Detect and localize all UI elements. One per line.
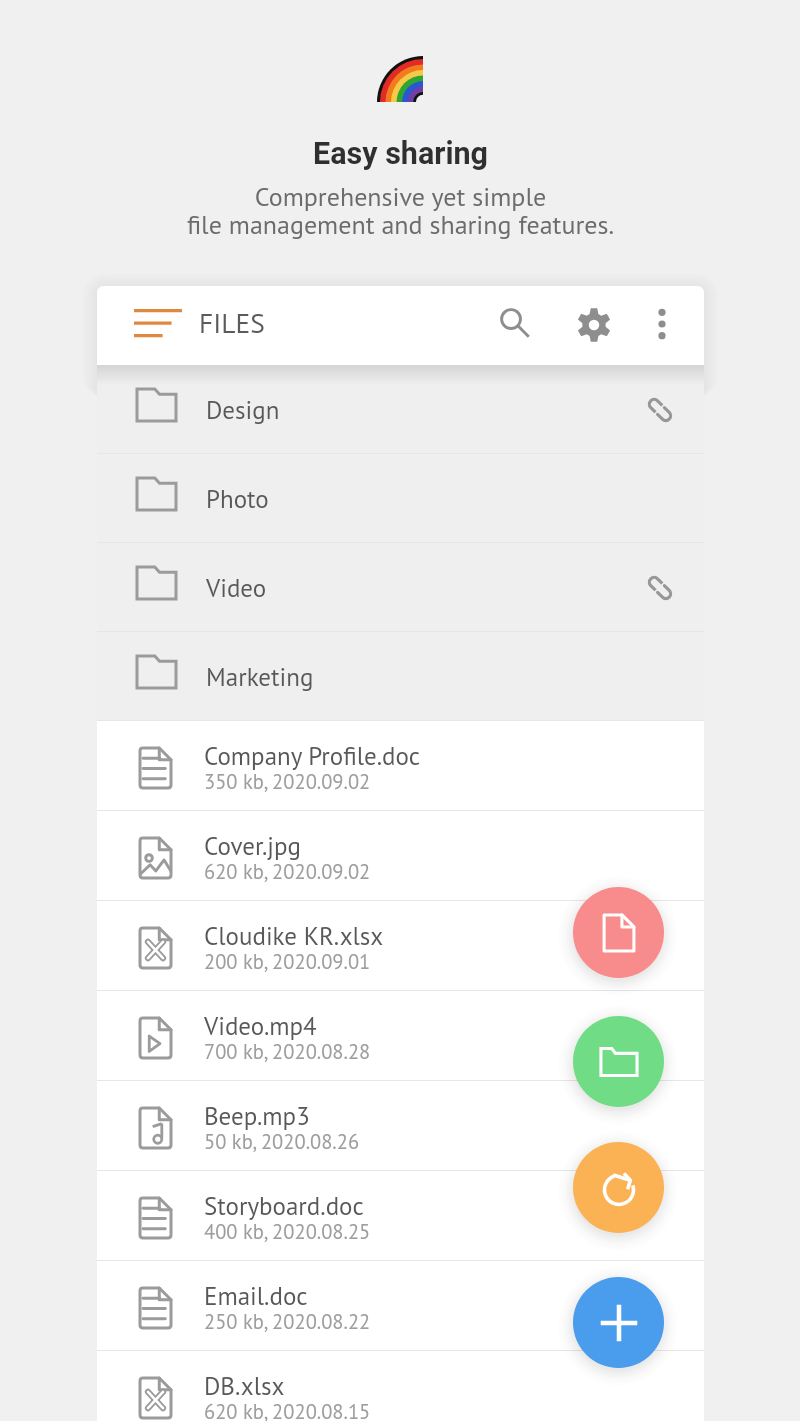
staticText: Photo xyxy=(206,483,269,515)
staticText: 200 kb, 2020.09.01 xyxy=(204,948,371,975)
staticText: Video xyxy=(206,572,267,604)
button[interactable]: New file xyxy=(573,887,664,978)
staticText: Easy sharing xyxy=(313,136,488,172)
button[interactable]: Storyboard.doc xyxy=(97,1171,704,1261)
button[interactable]: Email.doc xyxy=(97,1261,704,1351)
staticText: Comprehensive yet simple file management… xyxy=(187,180,614,241)
button[interactable]: Design xyxy=(97,365,704,454)
staticText: 400 kb, 2020.08.25 xyxy=(204,1218,371,1245)
staticText: Beep.mp3 xyxy=(204,1100,310,1132)
button[interactable]: Cover.jpg xyxy=(97,811,704,901)
staticText: Video.mp4 xyxy=(204,1010,317,1042)
button[interactable]: DB.xlsx xyxy=(97,1351,704,1421)
button[interactable]: Cloudike KR.xlsx xyxy=(97,901,704,991)
staticText: Storyboard.doc xyxy=(204,1190,364,1222)
staticText: 50 kb, 2020.08.26 xyxy=(204,1128,360,1155)
staticText: Design xyxy=(206,394,280,426)
staticText: 620 kb, 2020.09.02 xyxy=(204,858,371,885)
button[interactable]: Video.mp4 xyxy=(97,991,704,1081)
button[interactable]: Photo xyxy=(97,454,704,543)
staticText: 250 kb, 2020.08.22 xyxy=(204,1308,371,1335)
button[interactable]: Settings xyxy=(566,298,622,354)
staticText: DB.xlsx xyxy=(204,1370,285,1402)
staticText: Cover.jpg xyxy=(204,830,301,862)
button[interactable]: Search xyxy=(488,298,544,354)
button[interactable]: Video xyxy=(97,543,704,632)
staticText: 350 kb, 2020.09.02 xyxy=(204,768,371,795)
button[interactable]: Company Profile.doc xyxy=(97,721,704,811)
staticText: Email.doc xyxy=(204,1280,308,1312)
button[interactable]: Marketing xyxy=(97,632,704,721)
button[interactable]: More options xyxy=(636,300,688,352)
button[interactable]: Shared link xyxy=(636,564,684,612)
button[interactable]: Shared link xyxy=(636,386,684,434)
button[interactable]: Add xyxy=(573,1277,664,1368)
staticText: FILES xyxy=(199,305,265,341)
button[interactable]: Refresh xyxy=(573,1142,664,1233)
staticText: 620 kb, 2020.08.15 xyxy=(204,1398,371,1421)
button[interactable]: Menu xyxy=(127,301,189,351)
button[interactable]: New folder xyxy=(573,1016,664,1107)
staticText: Company Profile.doc xyxy=(204,740,421,772)
staticText: Marketing xyxy=(206,661,314,693)
button[interactable]: Beep.mp3 xyxy=(97,1081,704,1171)
staticText: 700 kb, 2020.08.28 xyxy=(204,1038,371,1065)
staticText: Cloudike KR.xlsx xyxy=(204,920,384,952)
